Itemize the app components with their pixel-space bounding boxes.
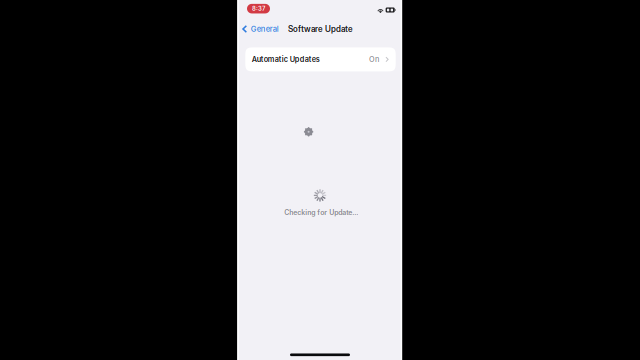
staticText: Automatic Updates (252, 55, 320, 64)
button[interactable]: Automatic Updates (245, 47, 396, 71)
button[interactable]: General (240, 22, 280, 36)
staticText: General (251, 24, 279, 34)
staticText: On (369, 55, 379, 64)
staticText: Checking for Update... (284, 208, 358, 217)
staticText: Software Update (288, 24, 353, 34)
staticText: 8:37 (252, 5, 265, 12)
